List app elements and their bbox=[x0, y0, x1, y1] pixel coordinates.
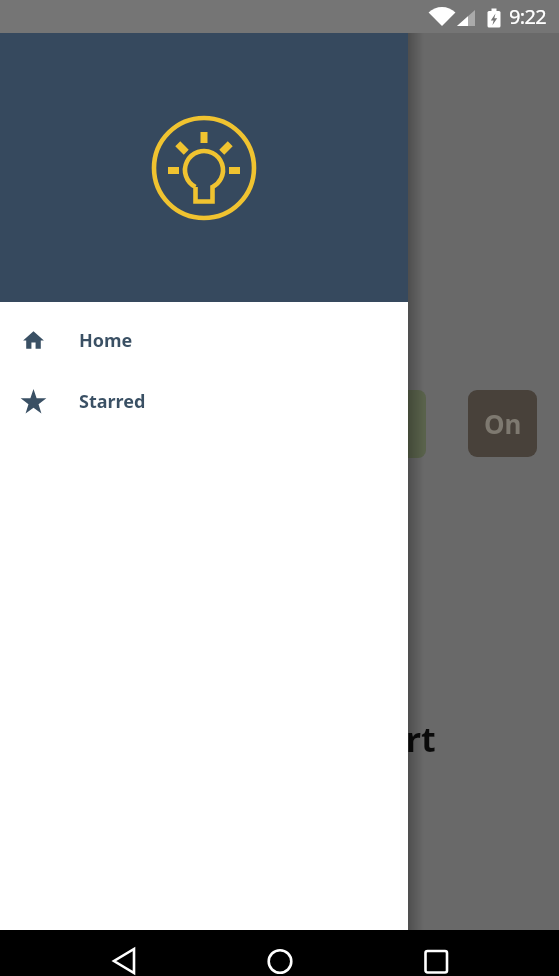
staticText: Start bbox=[352, 716, 436, 762]
button[interactable]: On bbox=[468, 390, 537, 457]
staticText: 9:22 bbox=[509, 3, 546, 30]
staticText: Home bbox=[79, 328, 133, 353]
button[interactable] bbox=[0, 930, 187, 976]
button[interactable] bbox=[373, 930, 559, 976]
button[interactable]: Home bbox=[0, 310, 408, 371]
staticText: Starred bbox=[79, 389, 146, 414]
button[interactable]: Starred bbox=[0, 371, 408, 432]
staticText: On bbox=[484, 406, 522, 441]
button[interactable] bbox=[187, 930, 373, 976]
